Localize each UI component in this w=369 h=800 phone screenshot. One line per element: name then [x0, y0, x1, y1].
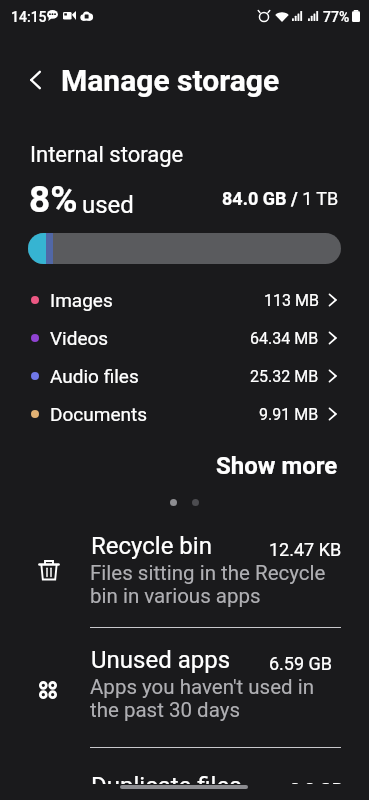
- staticText: Files sitting in the Recycle: [90, 561, 326, 585]
- staticText: Documents: [50, 403, 147, 425]
- staticText: 113 MB: [264, 291, 319, 310]
- staticText: the past 30 days: [90, 698, 240, 722]
- staticText: 14:15: [11, 9, 47, 25]
- button[interactable]: Show more: [0, 447, 369, 485]
- staticText: 64.34 MB: [250, 329, 319, 348]
- staticText: Duplicate files: [91, 772, 242, 800]
- button[interactable]: Audio files: [0, 357, 369, 395]
- staticText: Show more: [216, 452, 338, 480]
- staticText: 12.47 KB: [269, 539, 342, 560]
- staticText: Unused apps: [91, 646, 231, 674]
- button[interactable]: Recycle bin: [0, 533, 369, 613]
- staticText: 84.0 GB / 1 TB: [222, 188, 339, 209]
- staticText: Videos: [50, 327, 109, 349]
- button[interactable]: Images: [0, 281, 369, 319]
- button[interactable]: Unused apps: [0, 647, 369, 727]
- button[interactable]: Back: [14, 58, 58, 102]
- button[interactable]: Duplicate files: [0, 771, 369, 800]
- staticText: 8%: [29, 178, 78, 221]
- staticText: Images: [50, 289, 113, 311]
- staticText: 6.59 GB: [269, 653, 333, 674]
- staticText: Audio files: [50, 365, 139, 387]
- staticText: bin in various apps: [90, 584, 261, 608]
- staticText: Internal storage: [30, 142, 184, 168]
- staticText: Apps you haven't used in: [90, 675, 315, 699]
- staticText: 9.91 MB: [259, 405, 319, 424]
- staticText: 77%: [323, 9, 350, 25]
- staticText: Recycle bin: [91, 532, 212, 560]
- staticText: used: [82, 191, 134, 219]
- staticText: 25.32 MB: [250, 367, 319, 386]
- button[interactable]: Videos: [0, 319, 369, 357]
- button[interactable]: Documents: [0, 395, 369, 433]
- staticText: Manage storage: [61, 63, 280, 98]
- staticText: 3.2 GB: [290, 779, 343, 800]
